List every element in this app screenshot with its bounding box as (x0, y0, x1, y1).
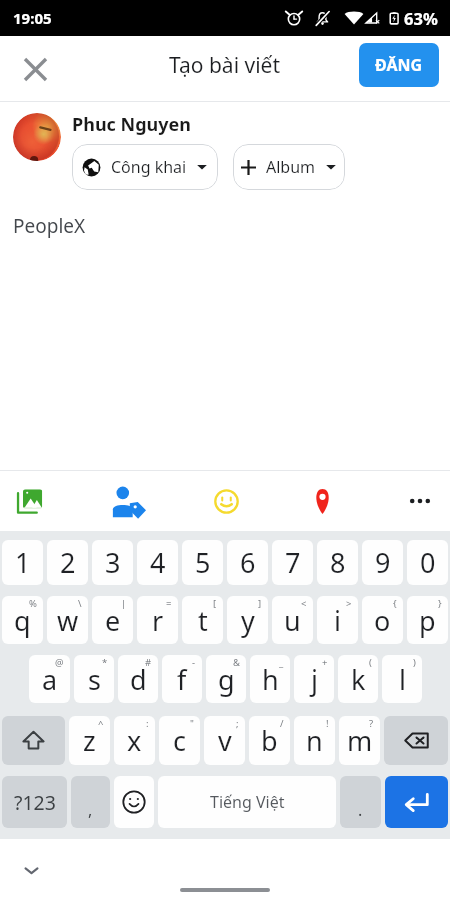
button[interactable]: f (162, 655, 202, 703)
button[interactable]: Check in (298, 471, 346, 531)
staticText: ; (236, 717, 239, 730)
staticText: , (88, 799, 93, 821)
button[interactable]: ?123 (2, 776, 67, 828)
button[interactable]: x (114, 716, 155, 765)
button[interactable]: r (137, 596, 178, 644)
staticText: / (280, 717, 284, 730)
staticText: p (419, 602, 436, 639)
staticText: m (347, 722, 373, 759)
staticText: 4 (150, 544, 166, 581)
button[interactable]: a (29, 655, 70, 703)
button[interactable]: Công khai (72, 144, 218, 190)
staticText: " (190, 717, 194, 730)
button[interactable]: u (272, 596, 313, 644)
staticText: 7 (285, 544, 301, 581)
button[interactable]: Hide keyboard (9, 848, 53, 892)
button[interactable]: 0 (407, 540, 448, 585)
button[interactable]: b (249, 716, 290, 765)
staticText: i (334, 602, 341, 639)
button[interactable]: 6 (227, 540, 268, 585)
staticText: k (351, 661, 366, 698)
button[interactable]: Tiếng Việt (158, 776, 336, 828)
staticText: > (346, 597, 352, 610)
button[interactable]: 3 (92, 540, 133, 585)
staticText: @ (55, 656, 64, 669)
button[interactable]: 5 (182, 540, 223, 585)
button[interactable]: Photos (6, 471, 54, 531)
staticText: 0 (420, 544, 436, 581)
button[interactable]: p (407, 596, 448, 644)
staticText: ) (413, 656, 416, 669)
button[interactable]: More options (396, 471, 444, 531)
button[interactable]: h (250, 655, 290, 703)
button[interactable]: ĐĂNG (359, 43, 439, 87)
staticText: * (102, 656, 108, 669)
button[interactable]: Album (233, 144, 345, 190)
staticText: o (374, 602, 391, 639)
staticText: 2 (60, 544, 76, 581)
button[interactable]: l (382, 655, 422, 703)
button[interactable]: g (206, 655, 246, 703)
staticText: % (29, 597, 37, 610)
staticText: y (241, 602, 255, 639)
staticText: a (42, 661, 58, 698)
button[interactable]: y (227, 596, 268, 644)
button[interactable]: Backspace (384, 716, 448, 765)
staticText: 8 (330, 544, 346, 581)
button[interactable]: Tag people (104, 471, 152, 531)
button[interactable]: . (340, 776, 381, 828)
button[interactable]: q (2, 596, 43, 644)
button[interactable]: j (294, 655, 334, 703)
staticText: l (399, 661, 406, 698)
staticText: ? (369, 717, 374, 730)
staticText: s (88, 661, 101, 698)
staticText: 6 (240, 544, 256, 581)
staticText: } (438, 597, 442, 610)
button[interactable]: w (47, 596, 88, 644)
staticText: z (83, 722, 96, 759)
button[interactable]: 2 (47, 540, 88, 585)
button[interactable]: t (182, 596, 223, 644)
button[interactable]: s (74, 655, 114, 703)
button[interactable]: 7 (272, 540, 313, 585)
button[interactable]: k (338, 655, 378, 703)
button[interactable]: 9 (362, 540, 403, 585)
staticText: 19:05 (13, 8, 52, 28)
button[interactable]: o (362, 596, 403, 644)
staticText: Tiếng Việt (210, 791, 285, 813)
staticText: - (192, 656, 196, 669)
button[interactable]: Emoji (114, 776, 154, 828)
staticText: 9 (375, 544, 391, 581)
button[interactable]: 1 (2, 540, 43, 585)
staticText: ĐĂNG (375, 54, 423, 76)
staticText: f (177, 661, 187, 698)
button[interactable]: z (69, 716, 110, 765)
button[interactable]: c (159, 716, 200, 765)
staticText: v (218, 722, 232, 759)
button[interactable]: i (317, 596, 358, 644)
button[interactable]: m (339, 716, 380, 765)
staticText: # (145, 656, 152, 669)
button[interactable]: 8 (317, 540, 358, 585)
staticText: d (130, 661, 147, 698)
button[interactable]: d (118, 655, 158, 703)
staticText: < (301, 597, 307, 610)
button[interactable]: Close (8, 42, 62, 96)
staticText: \ (78, 597, 82, 610)
button[interactable]: e (92, 596, 133, 644)
staticText: Phuc Nguyen (72, 112, 191, 137)
staticText: h (262, 661, 279, 698)
staticText: n (306, 722, 323, 759)
staticText: Công khai (111, 156, 187, 178)
button[interactable]: , (71, 776, 110, 828)
button[interactable]: 4 (137, 540, 178, 585)
button[interactable]: Shift (2, 716, 65, 765)
button[interactable]: v (204, 716, 245, 765)
button[interactable]: n (294, 716, 335, 765)
button[interactable]: Feeling (202, 471, 250, 531)
staticText: ^ (98, 717, 104, 730)
staticText: 1 (15, 544, 31, 581)
button[interactable]: Enter (385, 776, 448, 828)
staticText: c (173, 722, 186, 759)
staticText: e (105, 602, 121, 639)
